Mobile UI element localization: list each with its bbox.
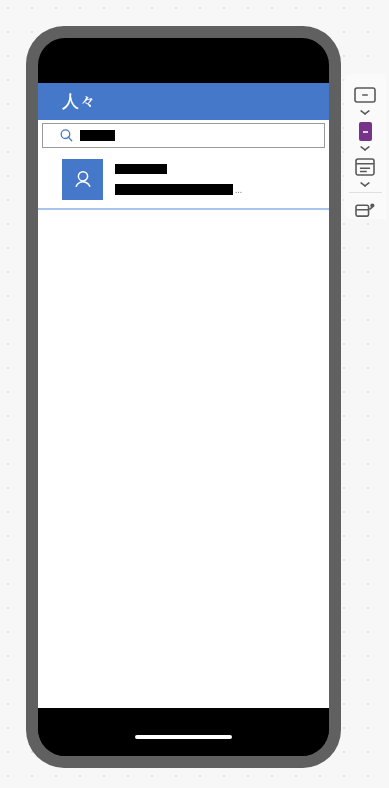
other: Search [60, 129, 73, 142]
button[interactable]: Settings [352, 199, 378, 219]
button[interactable]: Search [42, 123, 325, 148]
staticText: … [235, 183, 243, 195]
button[interactable]: Home gesture bar [135, 735, 232, 739]
staticText: 人々 [62, 91, 96, 112]
button[interactable]: API level [352, 154, 378, 180]
button[interactable]: 人々 [38, 83, 329, 120]
button[interactable]: Device type [352, 118, 378, 144]
button[interactable]: … [38, 151, 329, 210]
button[interactable]: Select device [352, 82, 378, 108]
